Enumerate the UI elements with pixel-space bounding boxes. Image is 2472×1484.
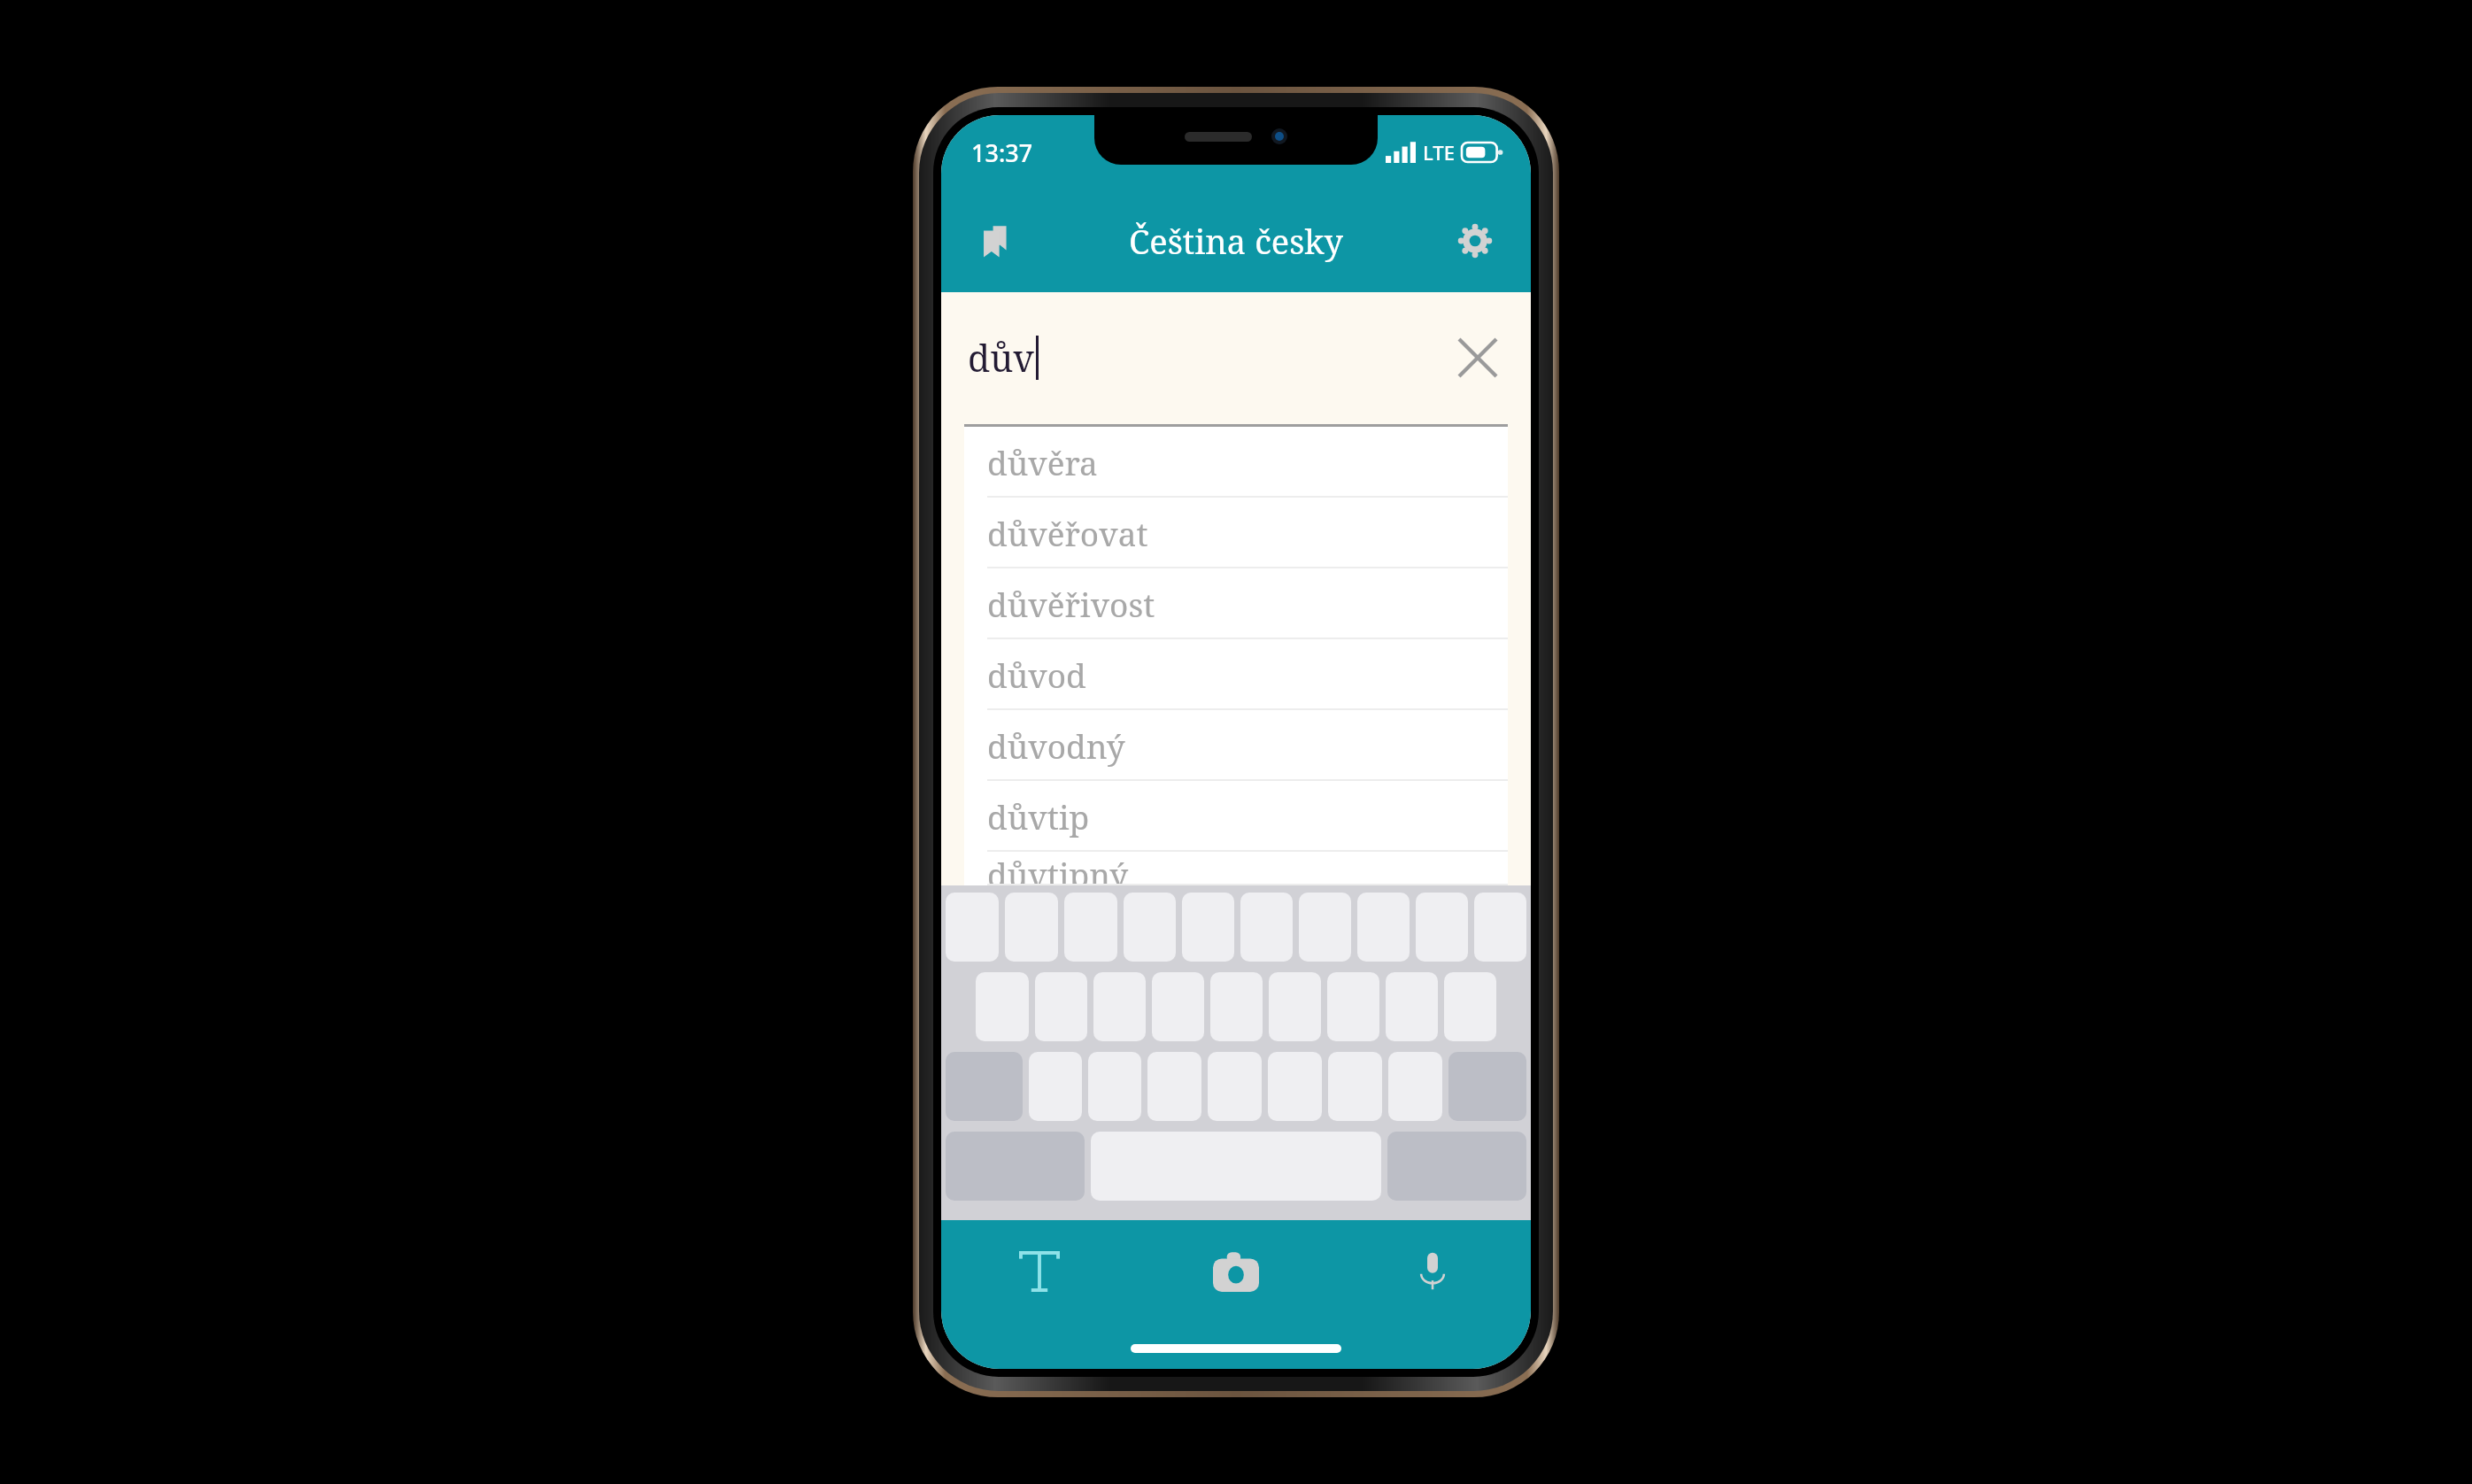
- staticText: důvěřivost: [987, 582, 1155, 626]
- button[interactable]: Key: [1088, 1052, 1141, 1121]
- button[interactable]: Key: [1240, 893, 1293, 962]
- button[interactable]: Key: [1035, 972, 1087, 1041]
- button[interactable]: Text input: [941, 1220, 1138, 1323]
- button[interactable]: Key: [1474, 893, 1526, 962]
- button[interactable]: Key: [1210, 972, 1263, 1041]
- button[interactable]: Key: [1299, 893, 1351, 962]
- button[interactable]: Bookmarks: [964, 208, 1030, 274]
- staticText: důvěřovat: [987, 511, 1148, 555]
- button[interactable]: Key: [1448, 1052, 1526, 1121]
- staticText: důvtip: [987, 794, 1090, 839]
- button[interactable]: Key: [1386, 972, 1438, 1041]
- button[interactable]: důvtip: [964, 781, 1508, 852]
- staticText: důvodný: [987, 723, 1125, 768]
- staticText: dův: [968, 333, 1034, 383]
- button[interactable]: Key: [1208, 1052, 1262, 1121]
- button[interactable]: Key: [1124, 893, 1176, 962]
- button[interactable]: důvod: [964, 639, 1508, 710]
- button[interactable]: Key: [1064, 893, 1117, 962]
- staticText: důvod: [987, 653, 1086, 697]
- button[interactable]: důvtipný: [964, 852, 1508, 885]
- staticText: 13:37: [971, 136, 1033, 169]
- button[interactable]: Clear text: [1448, 328, 1508, 388]
- button[interactable]: Key: [1005, 893, 1058, 962]
- button[interactable]: Key: [1328, 1052, 1382, 1121]
- staticText: důvěra: [987, 440, 1098, 484]
- button[interactable]: Key: [1416, 893, 1468, 962]
- button[interactable]: Key: [1182, 893, 1234, 962]
- staticText: důvtipný: [987, 852, 1129, 885]
- button[interactable]: důvodný: [964, 710, 1508, 781]
- staticText: LTE: [1423, 139, 1455, 166]
- button[interactable]: Key: [1093, 972, 1146, 1041]
- button[interactable]: Key: [946, 893, 999, 962]
- button[interactable]: Camera: [1138, 1220, 1334, 1323]
- button[interactable]: Key: [1388, 1052, 1442, 1121]
- button[interactable]: důvěřivost: [964, 568, 1508, 639]
- button[interactable]: Key: [1269, 972, 1321, 1041]
- button[interactable]: důvěra: [964, 427, 1508, 498]
- button[interactable]: Voice input: [1334, 1220, 1531, 1323]
- button[interactable]: Key: [1152, 972, 1204, 1041]
- button[interactable]: Key: [976, 972, 1029, 1041]
- button[interactable]: Key: [1357, 893, 1410, 962]
- button[interactable]: Key: [1444, 972, 1496, 1041]
- staticText: Čeština česky: [1030, 218, 1442, 264]
- button[interactable]: důvěřovat: [964, 498, 1508, 568]
- button[interactable]: Settings: [1442, 208, 1508, 274]
- button[interactable]: Key: [1029, 1052, 1082, 1121]
- button[interactable]: Key: [1327, 972, 1379, 1041]
- button[interactable]: Key: [1268, 1052, 1322, 1121]
- button[interactable]: Key: [1147, 1052, 1201, 1121]
